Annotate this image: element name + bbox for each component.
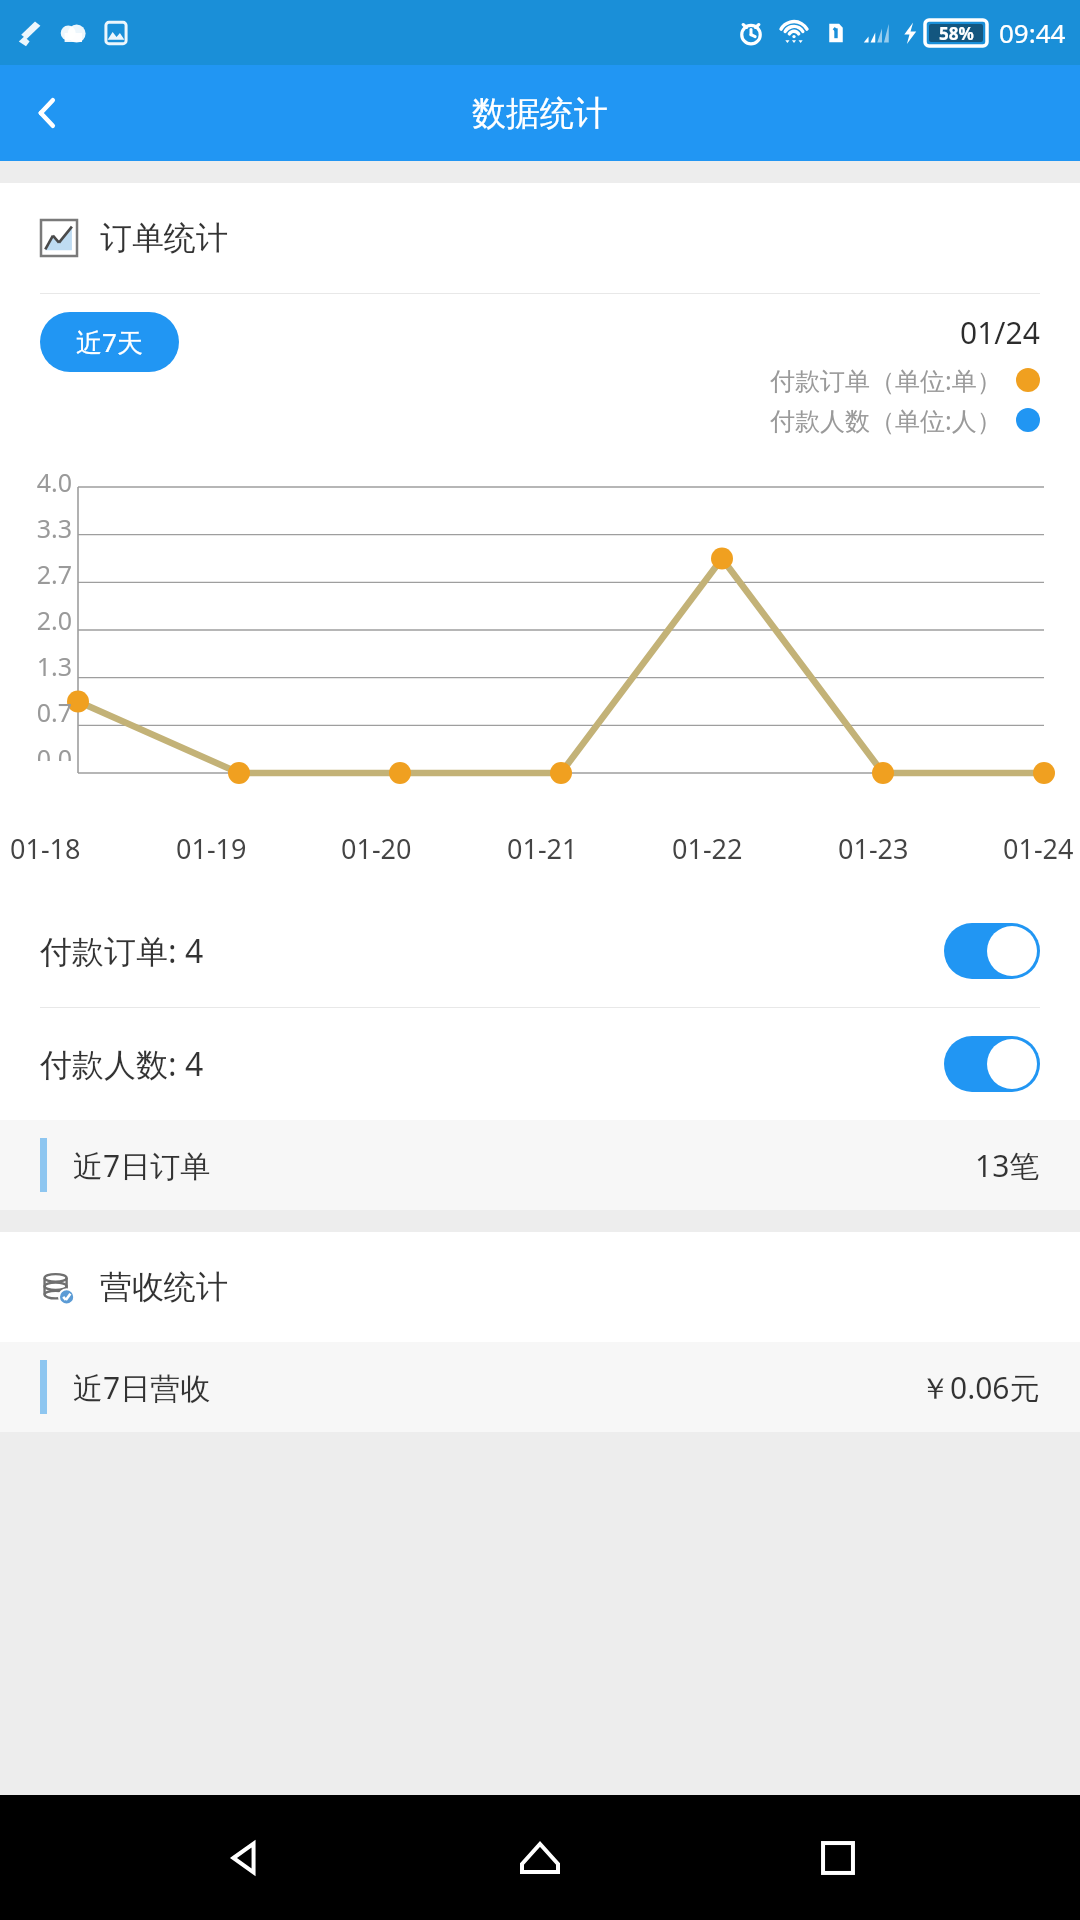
staticText: 近7天 — [76, 324, 143, 360]
staticText: 2.7 — [36, 557, 72, 591]
button[interactable]: 近7天 — [40, 312, 179, 372]
staticText: 01-23 — [838, 830, 909, 867]
staticText: 01/24 — [960, 312, 1040, 353]
staticText: 01-24 — [1003, 830, 1074, 867]
staticText: 0.7 — [36, 695, 72, 729]
button[interactable]: 付款订单: 4 — [0, 895, 1080, 1007]
button[interactable]: 近7日营收 — [0, 1342, 1080, 1432]
staticText: 01-18 — [10, 830, 81, 867]
staticText: 近7日营收 — [73, 1367, 211, 1408]
staticText: 付款订单（单位:单） — [770, 363, 1002, 397]
staticText: 0.0 — [36, 741, 72, 761]
staticText: 订单统计 — [100, 218, 228, 258]
button[interactable]: Toggle — [944, 923, 1040, 979]
staticText: 1.3 — [36, 649, 72, 683]
staticText: 3.3 — [36, 511, 72, 545]
staticText: 付款订单: 4 — [40, 929, 204, 973]
staticText: 01-22 — [672, 830, 743, 867]
staticText: 09:44 — [999, 15, 1066, 50]
button[interactable]: Recents — [783, 1803, 893, 1913]
button[interactable]: 付款人数: 4 — [0, 1008, 1080, 1120]
staticText: 01-20 — [341, 830, 412, 867]
staticText: 付款人数（单位:人） — [770, 403, 1002, 437]
staticText: ￥0.06元 — [920, 1367, 1040, 1408]
button[interactable]: Back — [0, 65, 96, 161]
staticText: 01-19 — [176, 830, 247, 867]
staticText: 数据统计 — [472, 92, 608, 135]
staticText: 01-21 — [507, 830, 578, 867]
button[interactable]: Toggle — [944, 1036, 1040, 1092]
button[interactable]: 近7日订单 — [0, 1120, 1080, 1210]
button[interactable]: Home — [485, 1803, 595, 1913]
staticText: 13笔 — [975, 1145, 1040, 1186]
staticText: 近7日订单 — [73, 1145, 211, 1186]
staticText: 4.0 — [36, 465, 72, 499]
staticText: 58% — [939, 22, 974, 45]
staticText: 2.0 — [36, 603, 72, 637]
staticText: 营收统计 — [100, 1267, 228, 1307]
button[interactable]: Back — [188, 1803, 298, 1913]
staticText: 付款人数: 4 — [40, 1042, 204, 1086]
